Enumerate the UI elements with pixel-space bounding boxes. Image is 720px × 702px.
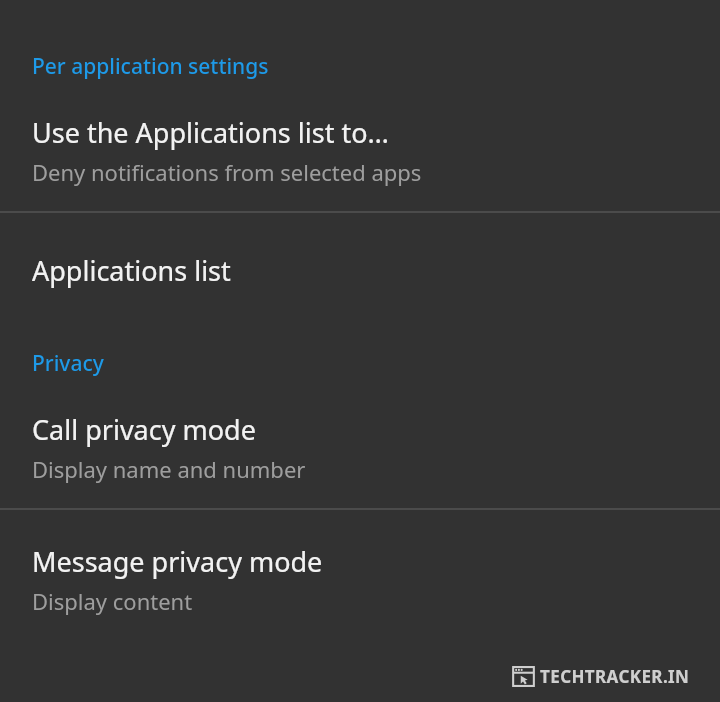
staticText: Privacy: [32, 349, 104, 378]
button[interactable]: Call privacy mode: [0, 378, 720, 508]
staticText: Applications list: [32, 252, 231, 289]
staticText: Call privacy mode: [32, 411, 256, 448]
button[interactable]: Applications list: [0, 213, 720, 329]
staticText: Deny notifications from selected apps: [32, 157, 422, 187]
staticText: Display name and number: [32, 454, 306, 484]
staticText: Display content: [32, 586, 193, 616]
button[interactable]: Message privacy mode: [0, 510, 720, 640]
staticText: Message privacy mode: [32, 543, 323, 580]
other: TechTracker.in logo: [512, 666, 535, 687]
staticText: TECHTRACKER.IN: [540, 665, 690, 688]
staticText: Per application settings: [32, 52, 269, 81]
staticText: Use the Applications list to…: [32, 114, 389, 151]
button[interactable]: Use the Applications list to…: [0, 81, 720, 211]
